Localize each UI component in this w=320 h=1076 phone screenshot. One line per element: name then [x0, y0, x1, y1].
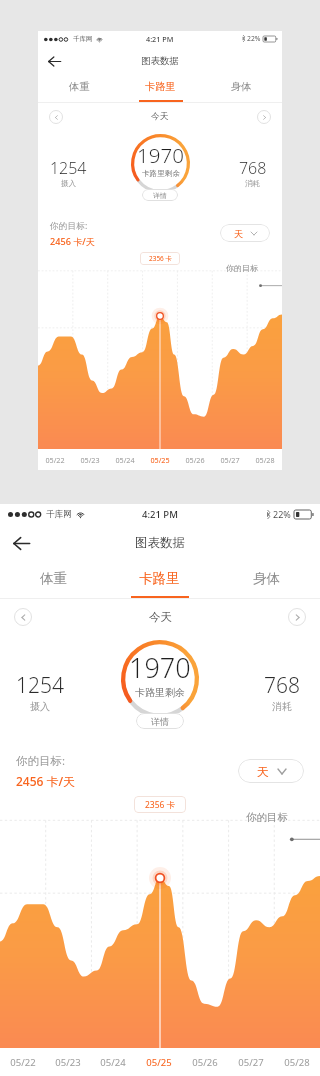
button[interactable]: 天 — [220, 224, 270, 242]
staticText: 768 — [264, 671, 300, 700]
staticText: 1970 — [137, 141, 184, 169]
staticText: 卡路里 — [139, 570, 180, 587]
staticText: 千库网 — [46, 509, 72, 520]
staticText: 消耗 — [272, 700, 292, 713]
staticText: 05/25 — [146, 1056, 172, 1069]
staticText: 22% — [247, 34, 261, 43]
staticText: 2356 卡 — [149, 254, 172, 263]
staticText: 2356 卡 — [145, 799, 176, 811]
staticText: 你的目标 — [246, 811, 288, 824]
staticText: 05/23 — [80, 455, 100, 465]
staticText: 05/28 — [255, 455, 275, 465]
staticText: 05/25 — [150, 455, 170, 465]
staticText: 05/26 — [185, 455, 205, 465]
staticText: 2456 卡/天 — [16, 773, 76, 789]
button[interactable]: 体重 — [0, 562, 106, 598]
staticText: 05/22 — [45, 455, 65, 465]
button[interactable]: 卡路里 — [106, 562, 213, 598]
staticText: 22% — [273, 508, 291, 520]
staticText: 千库网 — [73, 35, 93, 43]
staticText: 详情 — [153, 191, 167, 200]
staticText: 05/28 — [284, 1056, 310, 1069]
staticText: 卡路里 — [145, 80, 176, 93]
staticText: 1254 — [16, 671, 64, 700]
button[interactable]: 身体 — [201, 75, 282, 102]
button[interactable]: Back — [42, 49, 66, 73]
button[interactable]: Previous — [49, 110, 63, 124]
staticText: 图表数据 — [141, 55, 179, 67]
staticText: 05/26 — [192, 1056, 218, 1069]
staticText: 卡路里剩余 — [135, 686, 185, 699]
staticText: 05/22 — [10, 1056, 36, 1069]
staticText: 摄入 — [61, 179, 77, 189]
staticText: 05/24 — [100, 1056, 126, 1069]
staticText: 2456 卡/天 — [50, 235, 95, 247]
button[interactable]: 体重 — [38, 75, 120, 102]
staticText: 05/27 — [238, 1056, 264, 1069]
staticText: 体重 — [40, 570, 67, 587]
staticText: 1970 — [129, 649, 191, 686]
staticText: 图表数据 — [135, 535, 185, 551]
button[interactable]: 详情 — [142, 189, 178, 201]
staticText: 身体 — [231, 80, 252, 93]
button[interactable]: 身体 — [213, 562, 320, 598]
staticText: 摄入 — [30, 700, 50, 713]
staticText: 详情 — [151, 716, 169, 727]
staticText: 05/23 — [55, 1056, 81, 1069]
staticText: 消耗 — [245, 179, 261, 189]
staticText: 身体 — [253, 570, 280, 587]
button[interactable]: Next — [288, 608, 306, 626]
staticText: 05/24 — [115, 455, 135, 465]
staticText: 你的目标: — [50, 220, 88, 232]
button[interactable]: 天 — [238, 759, 304, 783]
button[interactable]: 卡路里 — [120, 75, 201, 102]
staticText: 体重 — [69, 80, 90, 93]
staticText: 卡路里剩余 — [142, 169, 180, 179]
staticText: 4:21 PM — [142, 508, 178, 521]
staticText: 768 — [239, 157, 267, 179]
button[interactable]: Previous — [14, 608, 32, 626]
button[interactable]: Next — [257, 110, 271, 124]
staticText: 你的目标: — [16, 753, 66, 769]
staticText: 今天 — [151, 111, 169, 122]
staticText: 天 — [234, 228, 244, 239]
staticText: 你的目标 — [226, 263, 258, 273]
button[interactable]: 详情 — [136, 713, 184, 729]
staticText: 今天 — [149, 610, 172, 624]
staticText: 1254 — [50, 157, 87, 179]
staticText: 天 — [257, 764, 269, 779]
staticText: 4:21 PM — [146, 34, 174, 44]
staticText: 05/27 — [220, 455, 240, 465]
button[interactable]: Back — [5, 527, 37, 559]
